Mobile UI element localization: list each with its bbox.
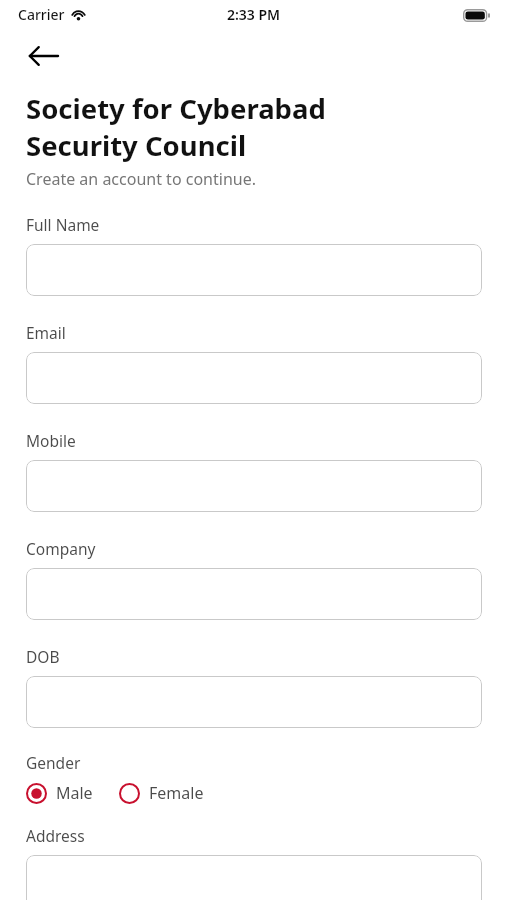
button[interactable]: Company xyxy=(26,568,482,620)
staticText: Security Council xyxy=(26,127,247,164)
button[interactable]: DOB xyxy=(26,676,482,728)
button[interactable]: Back xyxy=(20,38,66,74)
staticText: Female xyxy=(149,782,204,804)
staticText: Create an account to continue. xyxy=(26,168,256,190)
button[interactable]: Email xyxy=(26,352,482,404)
staticText: DOB xyxy=(26,646,60,667)
staticText: Full Name xyxy=(26,214,100,235)
staticText: Address xyxy=(26,825,85,846)
staticText: Male xyxy=(56,782,93,804)
staticText: 2:33 PM xyxy=(0,5,507,24)
staticText: Company xyxy=(26,538,96,559)
button[interactable]: Full Name xyxy=(26,244,482,296)
staticText: Society for Cyberabad xyxy=(26,90,326,127)
staticText: Gender xyxy=(26,752,81,773)
staticText: Mobile xyxy=(26,430,76,451)
button[interactable]: Address xyxy=(26,855,482,900)
button[interactable]: Mobile xyxy=(26,460,482,512)
button[interactable]: Male xyxy=(26,782,93,804)
staticText: Carrier xyxy=(18,5,65,24)
button[interactable]: Female xyxy=(119,782,204,804)
staticText: Email xyxy=(26,322,66,343)
